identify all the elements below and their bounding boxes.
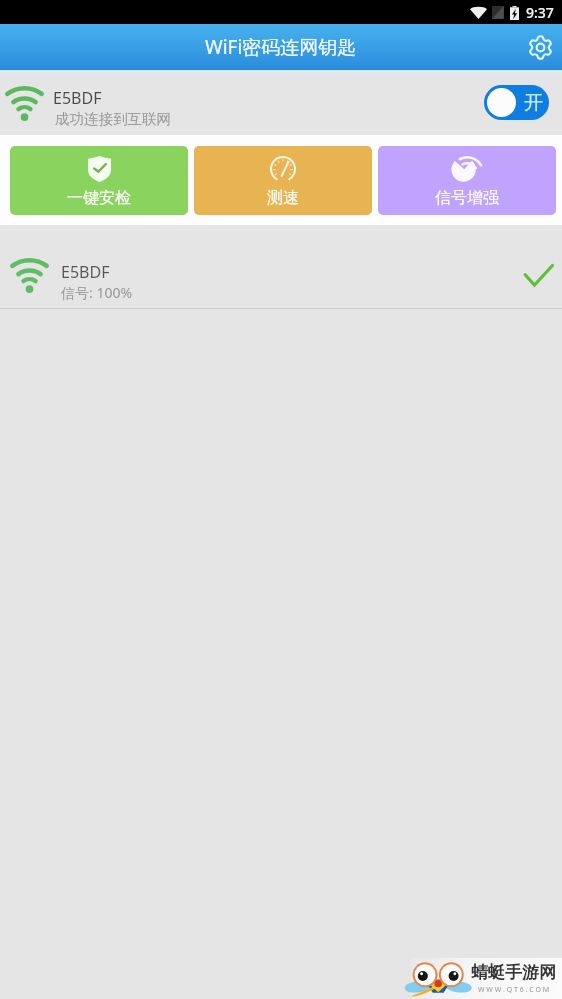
staticText: 信号增强 (435, 188, 499, 208)
button[interactable]: 测速 (194, 146, 372, 215)
staticText: WiFi密码连网钥匙 (205, 34, 357, 60)
staticText: 成功连接到互联网 (55, 110, 171, 128)
staticText: 一键安检 (67, 188, 131, 208)
button[interactable]: Settings (518, 25, 562, 69)
staticText: W W W . Q T 6 . C O M (478, 985, 550, 995)
staticText: 信号: 100% (61, 283, 133, 302)
button[interactable]: 信号增强 (378, 146, 556, 215)
button[interactable]: E5BDF (0, 225, 562, 308)
staticText: E5BDF (61, 261, 110, 283)
staticText: 测速 (267, 188, 299, 208)
button[interactable]: E5BDF (0, 73, 562, 135)
button[interactable]: 开 (484, 85, 549, 120)
staticText: 开 (524, 91, 543, 115)
staticText: 蜻蜓手游网 (471, 962, 556, 983)
staticText: 9:37 (526, 3, 554, 22)
staticText: E5BDF (53, 87, 102, 109)
button[interactable]: 一键安检 (10, 146, 188, 215)
